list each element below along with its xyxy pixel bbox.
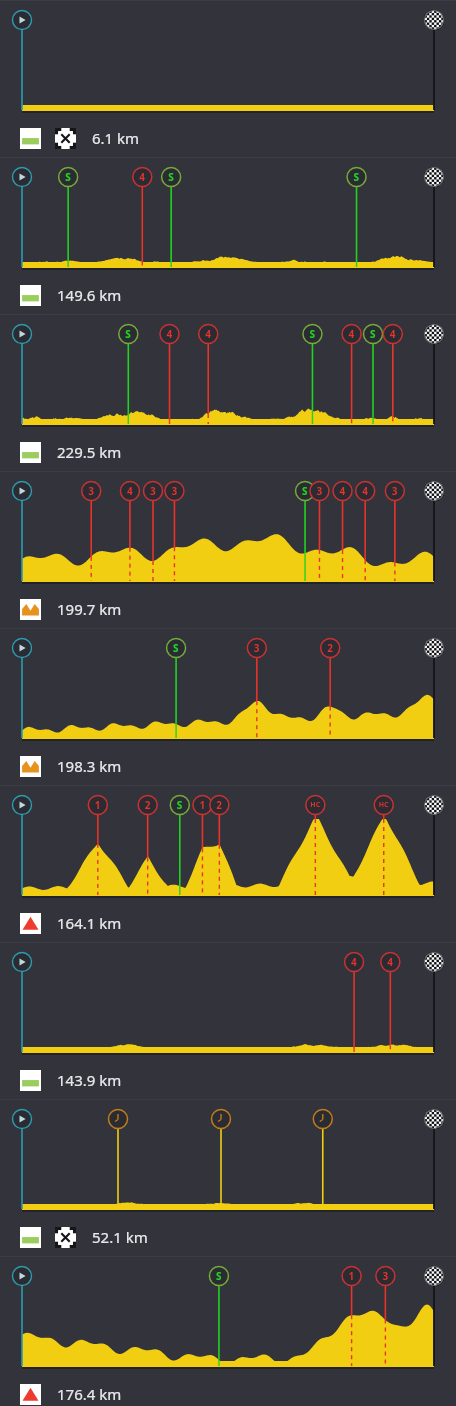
button[interactable]: 198.3 km [0, 628, 456, 785]
button[interactable]: 143.9 km [0, 942, 456, 1099]
button[interactable]: 149.6 km [0, 157, 456, 314]
button[interactable]: 199.7 km [0, 471, 456, 628]
button[interactable]: 52.1 km [0, 1099, 456, 1256]
button[interactable]: 176.4 km [0, 1256, 456, 1406]
staticText: 199.7 km [57, 599, 122, 619]
staticText: 149.6 km [57, 285, 122, 305]
button[interactable]: 229.5 km [0, 314, 456, 471]
staticText: 52.1 km [92, 1227, 148, 1247]
staticText: 229.5 km [57, 442, 122, 462]
button[interactable]: 6.1 km [0, 0, 456, 157]
staticText: 6.1 km [92, 128, 140, 148]
staticText: 164.1 km [57, 913, 122, 933]
staticText: 143.9 km [57, 1070, 122, 1090]
staticText: 176.4 km [57, 1384, 122, 1404]
button[interactable]: 164.1 km [0, 785, 456, 942]
staticText: 198.3 km [57, 756, 122, 776]
